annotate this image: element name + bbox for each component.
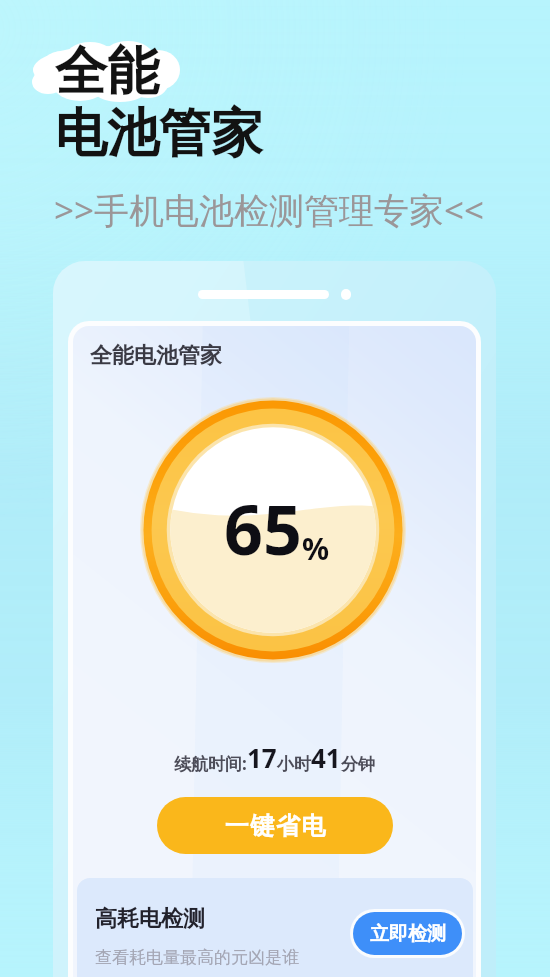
staticText: 立即检测 [370, 922, 446, 946]
staticText: 17 [247, 740, 277, 775]
staticText: 小时 [277, 754, 311, 775]
staticText: 电池管家 [55, 101, 263, 167]
staticText: % [302, 528, 330, 569]
staticText: 高耗电检测 [95, 905, 205, 933]
button[interactable]: 一键省电 [157, 797, 393, 854]
staticText: 续航时间: [174, 752, 247, 775]
staticText: 全能 [55, 39, 159, 105]
staticText: 全能电池管家 [90, 342, 222, 370]
staticText: 分钟 [341, 754, 375, 775]
staticText: 65 [224, 482, 302, 575]
staticText: 一键省电 [224, 811, 326, 841]
button[interactable]: 立即检测 [353, 912, 462, 955]
staticText: 查看耗电量最高的元凶是谁 [95, 947, 299, 968]
staticText: 41 [311, 740, 341, 775]
staticText: >>手机电池检测管理专家<< [54, 186, 485, 234]
